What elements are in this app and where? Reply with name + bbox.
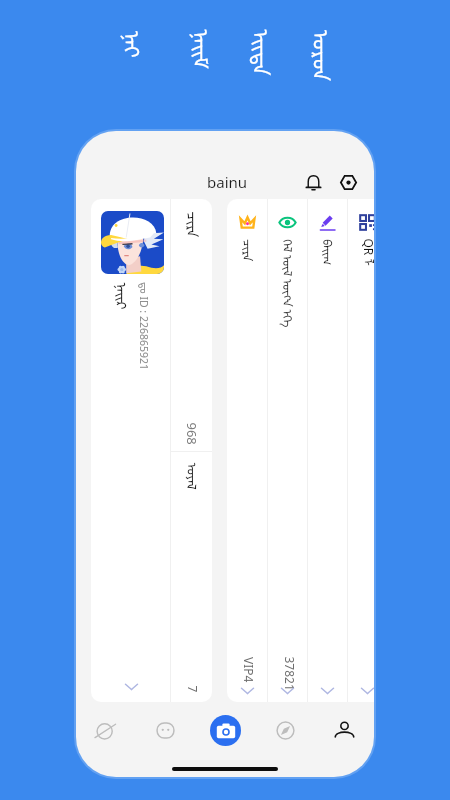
staticText: bainu [207, 172, 248, 192]
button[interactable]: Moments [89, 714, 122, 747]
staticText: 37821 [281, 656, 297, 691]
button[interactable]: ᠭᠡᠯ ᠦᠯ ᠦᠭᠨ ᠡᠭᠡ [267, 199, 307, 702]
staticText: ᠨᠠᠢᠮ [186, 29, 223, 69]
staticText: 968 [182, 422, 200, 445]
button[interactable]: Expand profile [121, 676, 141, 696]
staticText: ᠳᠤ ID : 226865921 [137, 282, 155, 370]
staticText: ᠴᠢᠷᠠ [181, 211, 206, 237]
button[interactable]: QR ᠯ [347, 199, 374, 702]
staticText: ᠡᠢᠳᠡ [246, 29, 283, 75]
staticText: ᠣᠷᠤᠨ [307, 30, 344, 81]
staticText: ᠨᠠᠢ [118, 31, 155, 58]
staticText: VIP4 [241, 657, 257, 683]
button[interactable]: Chat [149, 714, 182, 747]
button[interactable]: Discover [269, 714, 302, 747]
staticText: ᠴᠢᠷᠠ [239, 239, 260, 262]
button[interactable]: ᠴᠢᠷᠠ [227, 199, 267, 702]
button[interactable]: ᠪᠠᠢᠭ [307, 199, 347, 702]
button[interactable]: Settings [335, 169, 361, 195]
staticText: ᠪᠠᠢᠭ [319, 239, 340, 266]
staticText: QR ᠯ [359, 238, 374, 266]
staticText: ᠨᠠᠢᠷ [110, 282, 135, 310]
staticText: 7 [184, 685, 200, 692]
button[interactable]: Me [328, 714, 361, 747]
staticText: ᠭᠡᠯ ᠦᠯ ᠦᠭᠨ ᠡᠭᠡ [279, 239, 300, 328]
staticText: ᠤᠶᠡᠯ [182, 462, 205, 490]
button[interactable]: Camera [210, 715, 241, 746]
button[interactable]: Notifications [300, 169, 326, 195]
